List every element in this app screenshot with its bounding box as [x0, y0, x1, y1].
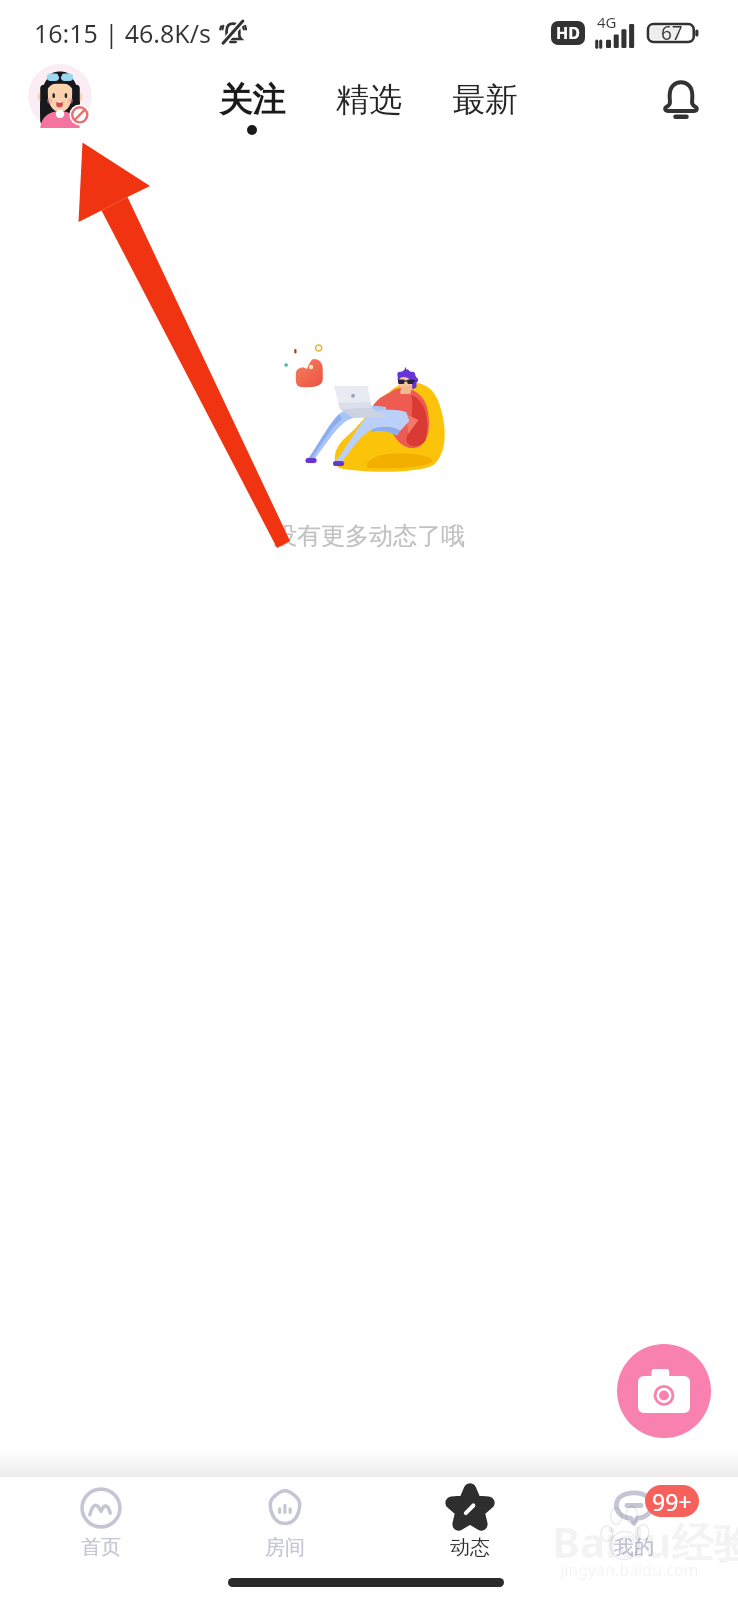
staticText: 16:15 | 46.8K/s	[34, 16, 212, 50]
button[interactable]: Take photo	[617, 1344, 711, 1438]
button[interactable]: 首页	[53, 1487, 149, 1571]
staticText: 99+	[652, 1486, 692, 1517]
button[interactable]: 房间	[237, 1487, 333, 1571]
button[interactable]: 我的	[586, 1487, 682, 1571]
staticText: 房间	[265, 1535, 305, 1560]
staticText: jingyan.baidu.com	[560, 1559, 699, 1581]
button[interactable]: Notifications	[655, 74, 707, 126]
staticText: 首页	[81, 1535, 121, 1560]
button[interactable]: 最新	[441, 79, 529, 137]
button[interactable]: 关注	[208, 79, 296, 137]
button[interactable]: Profile	[28, 64, 92, 128]
button[interactable]: 动态	[422, 1487, 518, 1571]
staticText: 最新	[452, 79, 518, 121]
staticText: 4G	[597, 12, 617, 32]
staticText: 动态	[450, 1535, 490, 1560]
button[interactable]: 精选	[325, 79, 413, 137]
staticText: 精选	[336, 79, 402, 121]
staticText: Baidu经验	[552, 1513, 738, 1570]
staticText: 我的	[614, 1535, 654, 1560]
staticText: 没有更多动态了哦	[273, 521, 465, 551]
staticText: 关注	[219, 79, 285, 121]
staticText: HD	[556, 22, 580, 44]
staticText: 67	[661, 20, 683, 46]
